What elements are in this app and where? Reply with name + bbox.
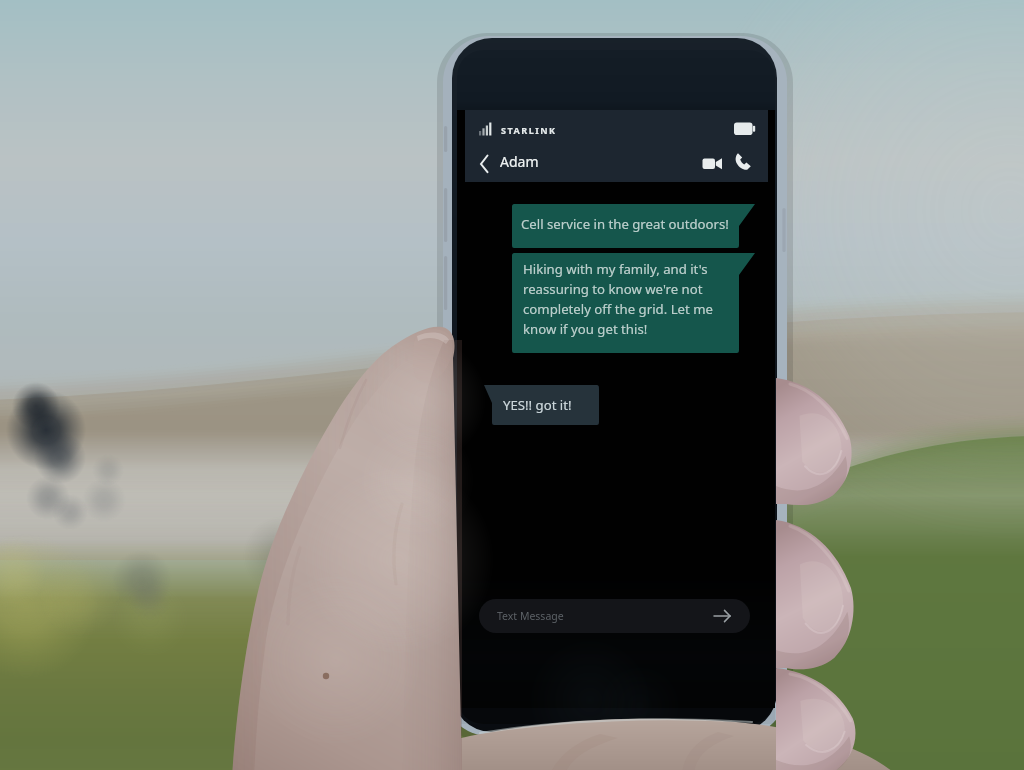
button[interactable]: Call [728, 146, 758, 176]
staticText: Hiking with my family, and it's reassuri… [523, 260, 713, 338]
staticText: Adam [500, 152, 539, 171]
button[interactable]: Back [471, 148, 497, 174]
button[interactable]: Video call [696, 146, 726, 176]
button[interactable]: Hiking with my family, and it's reassuri… [512, 253, 755, 353]
button[interactable]: Cell service in the great outdoors! [512, 204, 755, 248]
button[interactable]: Text Message [479, 599, 750, 633]
button[interactable]: YES!! got it! [484, 385, 599, 425]
staticText: Cell service in the great outdoors! [521, 215, 729, 233]
staticText: YES!! got it! [503, 396, 572, 414]
staticText: STARLINK [501, 124, 557, 136]
staticText: Text Message [497, 609, 564, 623]
button[interactable]: Send [711, 604, 735, 628]
